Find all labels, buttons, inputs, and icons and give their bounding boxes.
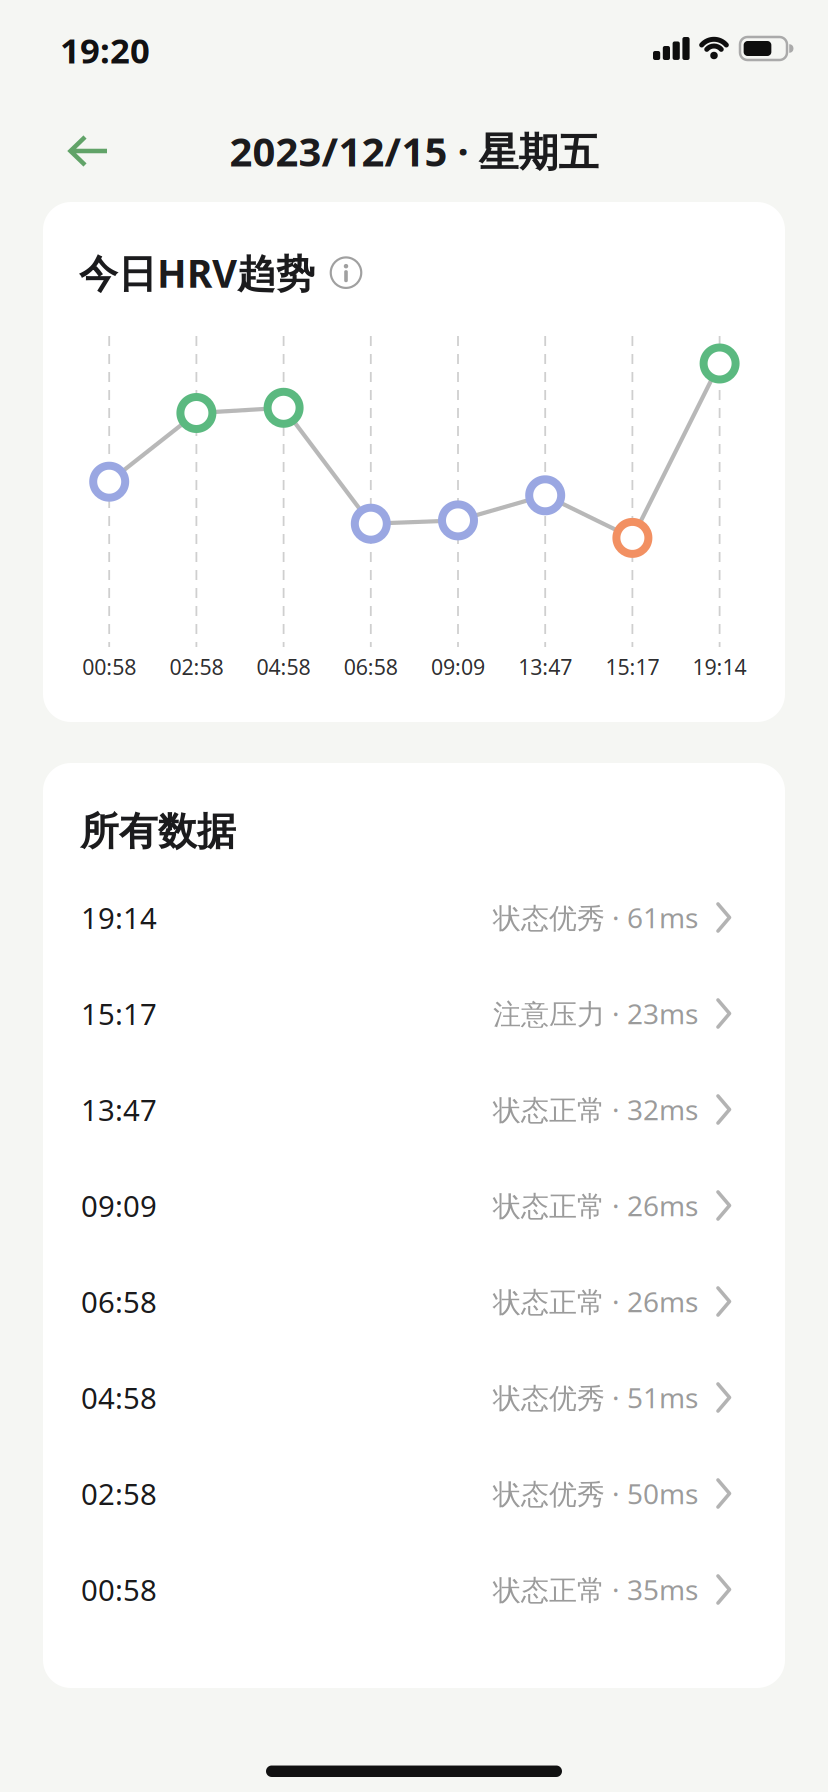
staticText: 19:14 [81, 898, 157, 937]
staticText: 状态优秀 · 51ms [493, 1379, 698, 1416]
staticText: 06:58 [344, 653, 398, 681]
button[interactable]: About HRV [330, 257, 362, 289]
staticText: 注意压力 · 23ms [493, 995, 698, 1032]
staticText: 19:20 [60, 27, 150, 73]
staticText: 状态正常 · 32ms [493, 1091, 698, 1128]
staticText: 06:58 [81, 1282, 157, 1321]
staticText: 状态优秀 · 61ms [493, 899, 698, 936]
staticText: 今日HRV趋势 [79, 247, 315, 298]
staticText: 00:58 [82, 653, 136, 681]
button[interactable]: 09:09 [43, 1186, 785, 1225]
button[interactable]: 04:58 [43, 1378, 785, 1417]
button[interactable]: 13:47 [43, 1090, 785, 1129]
staticText: 02:58 [169, 653, 223, 681]
staticText: 09:09 [431, 653, 485, 681]
staticText: 00:58 [81, 1570, 157, 1609]
staticText: 15:17 [81, 994, 157, 1033]
staticText: 状态正常 · 26ms [493, 1187, 698, 1224]
staticText: 04:58 [81, 1378, 157, 1417]
staticText: 所有数据 [80, 808, 236, 855]
button[interactable]: 02:58 [43, 1474, 785, 1513]
staticText: 19:14 [693, 653, 747, 681]
staticText: 13:47 [518, 653, 572, 681]
staticText: 02:58 [81, 1474, 157, 1513]
button[interactable]: 06:58 [43, 1282, 785, 1321]
staticText: 状态优秀 · 50ms [493, 1475, 698, 1512]
staticText: 04:58 [257, 653, 311, 681]
staticText: 状态正常 · 35ms [493, 1571, 698, 1608]
button[interactable]: 00:58 [43, 1570, 785, 1609]
button[interactable]: 19:14 [43, 898, 785, 937]
staticText: 09:09 [81, 1186, 157, 1225]
staticText: 状态正常 · 26ms [493, 1283, 698, 1320]
button[interactable]: Back [66, 129, 110, 173]
staticText: 2023/12/15 · 星期五 [229, 124, 598, 177]
staticText: 15:17 [605, 653, 659, 681]
staticText: 13:47 [81, 1090, 157, 1129]
button[interactable]: 15:17 [43, 994, 785, 1033]
